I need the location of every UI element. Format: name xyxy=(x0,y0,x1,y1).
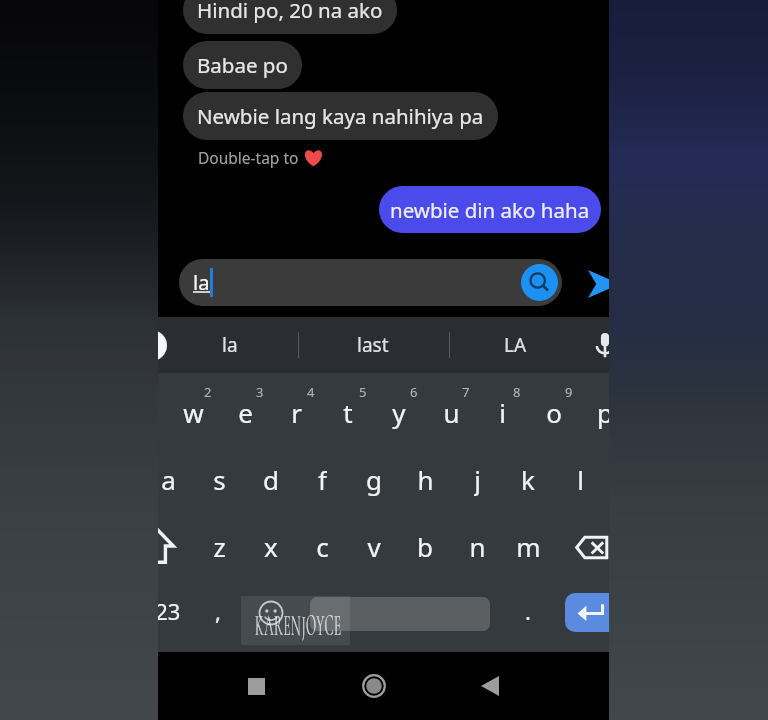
staticText: a xyxy=(161,462,176,496)
button[interactable]: Enter xyxy=(565,593,609,632)
button[interactable]: u xyxy=(425,395,477,429)
staticText: LA xyxy=(504,332,527,358)
staticText: Newbie lang kaya nahihiya pa xyxy=(197,102,484,130)
staticText: f xyxy=(318,462,327,496)
staticText: 4 xyxy=(307,383,315,399)
button[interactable]: k xyxy=(502,462,554,496)
button[interactable]: w xyxy=(167,395,219,429)
staticText: 2 xyxy=(204,383,212,399)
staticText: m xyxy=(516,529,541,563)
staticText: 7 xyxy=(462,383,470,399)
button[interactable]: j xyxy=(451,462,503,496)
button[interactable]: v xyxy=(348,529,400,563)
staticText: la xyxy=(193,269,210,296)
staticText: last xyxy=(357,332,389,358)
staticText: w xyxy=(183,395,204,429)
staticText: , xyxy=(215,596,221,626)
staticText: la xyxy=(222,332,238,358)
staticText: l xyxy=(577,462,584,496)
button[interactable]: Comma xyxy=(192,591,244,631)
button[interactable]: Home xyxy=(350,662,398,710)
staticText: 3 xyxy=(256,383,264,399)
button[interactable]: newbie din ako haha xyxy=(379,186,601,233)
button[interactable]: m xyxy=(502,529,554,563)
button[interactable]: Back xyxy=(466,662,514,710)
staticText: j xyxy=(474,462,481,496)
staticText: ?123 xyxy=(158,596,181,626)
staticText: c xyxy=(316,529,329,563)
button[interactable]: e xyxy=(219,395,271,429)
staticText: r xyxy=(291,395,302,429)
staticText: z xyxy=(213,529,226,563)
staticText: 6 xyxy=(410,383,418,399)
staticText: k xyxy=(521,462,535,496)
staticText: 9 xyxy=(565,383,573,399)
button[interactable]: Symbols xyxy=(158,591,189,631)
button[interactable]: last xyxy=(302,317,444,373)
button[interactable]: Voice input xyxy=(583,323,609,367)
staticText: e xyxy=(238,395,253,429)
button[interactable]: r xyxy=(270,395,322,429)
button[interactable]: Hindi po, 20 na ako xyxy=(183,0,397,34)
staticText: t xyxy=(343,395,353,429)
staticText: x xyxy=(264,529,278,563)
button[interactable]: i xyxy=(476,395,528,429)
button[interactable]: Period xyxy=(502,591,554,631)
button[interactable]: Newbie lang kaya nahihiya pa xyxy=(183,92,498,140)
staticText: b xyxy=(417,529,433,563)
staticText: g xyxy=(366,462,382,496)
button[interactable]: Backspace xyxy=(567,518,609,576)
button[interactable]: Space xyxy=(310,597,490,631)
button[interactable]: o xyxy=(528,395,580,429)
staticText: s xyxy=(213,462,226,496)
button[interactable]: g xyxy=(348,462,400,496)
staticText: y xyxy=(392,395,406,429)
button[interactable]: x xyxy=(245,529,297,563)
button[interactable]: LA xyxy=(452,317,578,373)
button[interactable]: y xyxy=(373,395,425,429)
button[interactable]: t xyxy=(322,395,374,429)
staticText: KARENJOYCE xyxy=(255,609,342,644)
button[interactable]: s xyxy=(193,462,245,496)
button[interactable]: n xyxy=(451,529,503,563)
button[interactable]: la xyxy=(178,317,282,373)
staticText: Hindi po, 20 na ako xyxy=(197,0,383,24)
staticText: o xyxy=(546,395,562,429)
staticText: 5 xyxy=(359,383,367,399)
button[interactable]: a xyxy=(158,462,194,496)
button[interactable]: Search xyxy=(521,264,558,301)
button[interactable]: z xyxy=(193,529,245,563)
button[interactable]: Send xyxy=(580,266,609,302)
button[interactable]: l xyxy=(554,462,606,496)
staticText: Double-tap to xyxy=(198,147,303,168)
button[interactable]: f xyxy=(296,462,348,496)
button[interactable]: Babae po xyxy=(183,41,302,89)
button[interactable]: la xyxy=(179,259,562,306)
button[interactable]: p xyxy=(579,395,609,429)
button[interactable]: d xyxy=(245,462,297,496)
staticText: u xyxy=(443,395,460,429)
staticText: n xyxy=(469,529,486,563)
staticText: Babae po xyxy=(197,51,288,79)
button[interactable]: c xyxy=(296,529,348,563)
staticText: v xyxy=(367,529,381,563)
staticText: p xyxy=(597,395,609,429)
button[interactable]: Shift xyxy=(158,518,184,576)
staticText: 8 xyxy=(513,383,521,399)
staticText: . xyxy=(525,596,531,626)
staticText: newbie din ako haha xyxy=(390,196,590,224)
button[interactable]: Recents xyxy=(232,662,280,710)
staticText: h xyxy=(417,462,434,496)
button[interactable]: h xyxy=(399,462,451,496)
staticText: d xyxy=(263,462,279,496)
button[interactable]: b xyxy=(399,529,451,563)
staticText: i xyxy=(499,395,506,429)
